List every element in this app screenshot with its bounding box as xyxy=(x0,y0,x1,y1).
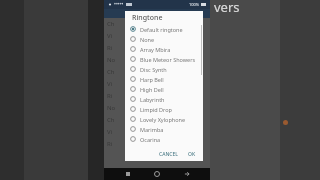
button[interactable]: Lovely Xylophone xyxy=(125,114,203,124)
staticText: No xyxy=(107,104,116,112)
staticText: OK xyxy=(188,151,196,158)
staticText: Harp Bell xyxy=(140,76,164,83)
staticText: vers xyxy=(214,0,240,16)
staticText: Labyrinth xyxy=(140,96,165,103)
staticText: Default ringtone xyxy=(140,26,183,33)
staticText: Vi xyxy=(107,80,113,88)
button[interactable]: Harp Bell xyxy=(125,74,203,84)
staticText: Blue Meteor Showers xyxy=(140,56,196,63)
button[interactable]: OK xyxy=(185,149,199,160)
button[interactable]: Labyrinth xyxy=(125,94,203,104)
staticText: Ch xyxy=(107,68,115,76)
button[interactable]: Limpid Drop xyxy=(125,104,203,114)
staticText: High Dell xyxy=(140,86,164,93)
staticText: Ch xyxy=(107,20,115,28)
button[interactable]: Array Mbira xyxy=(125,44,203,54)
staticText: Disc Synth xyxy=(140,66,167,73)
staticText: Marimba xyxy=(140,126,164,133)
button[interactable]: Back xyxy=(181,168,193,180)
staticText: No xyxy=(107,56,116,64)
staticText: Array Mbira xyxy=(140,46,171,53)
staticText: Vi xyxy=(107,128,113,136)
button[interactable]: High Dell xyxy=(125,84,203,94)
button[interactable]: Ocarina xyxy=(125,134,203,144)
staticText: Limpid Drop xyxy=(140,106,172,113)
staticText: Vi xyxy=(107,32,113,40)
staticText: Ri xyxy=(107,92,113,100)
button[interactable]: Disc Synth xyxy=(125,64,203,74)
button[interactable]: Default ringtone xyxy=(125,24,203,34)
staticText: Ri xyxy=(107,44,113,52)
staticText: ••••• xyxy=(114,1,124,8)
button[interactable]: Home xyxy=(151,168,163,180)
staticText: None xyxy=(140,36,155,43)
staticText: 100% xyxy=(189,2,200,7)
button[interactable]: None xyxy=(125,34,203,44)
button[interactable]: Blue Meteor Showers xyxy=(125,54,203,64)
button[interactable]: Marimba xyxy=(125,124,203,134)
button[interactable]: Recents xyxy=(122,168,134,180)
staticText: Ri xyxy=(107,140,113,148)
staticText: Ocarina xyxy=(140,136,161,143)
button[interactable]: CANCEL xyxy=(156,149,181,160)
staticText: Ch xyxy=(107,116,115,124)
staticText: Lovely Xylophone xyxy=(140,116,186,123)
staticText: Ringtone xyxy=(132,13,163,23)
staticText: CANCEL xyxy=(159,151,178,158)
